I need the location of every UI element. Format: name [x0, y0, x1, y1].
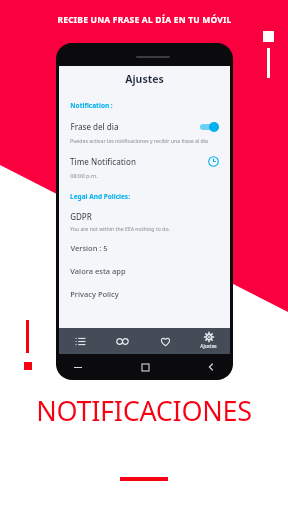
button[interactable]: Ajustes	[187, 328, 230, 354]
button[interactable]: Time Notification	[70, 156, 219, 167]
staticText: GDPR	[70, 211, 92, 222]
button[interactable]: Valora esta app	[70, 266, 219, 276]
staticText: Valora esta app	[70, 266, 126, 276]
button[interactable]: Home	[137, 359, 153, 375]
staticText: RECIBE UNA FRASE AL DÍA EN TU MÓVIL	[57, 14, 232, 26]
button[interactable]: Recents	[70, 359, 86, 375]
staticText: NOTIFICACIONES	[36, 392, 252, 429]
staticText: Frase del dia	[70, 121, 119, 132]
staticText: You are not within the EEA nothing to do…	[70, 225, 170, 232]
staticText: Ajustes	[200, 343, 217, 350]
other: Set time	[208, 156, 219, 167]
button[interactable]: Frases	[59, 328, 101, 354]
staticText: Ajustes	[125, 72, 164, 86]
staticText: Notification :	[70, 101, 113, 110]
staticText: Legal And Policies:	[70, 192, 130, 201]
button[interactable]: GDPR	[70, 211, 219, 222]
staticText: Puedes activar las notificaciones y reci…	[70, 137, 208, 144]
button[interactable]: Back	[203, 359, 219, 375]
button[interactable]: Frase del dia	[70, 121, 219, 132]
staticText: 08:00 p.m.	[70, 172, 98, 180]
staticText: Privacy Policy	[70, 289, 119, 299]
button[interactable]: Aleatorio	[101, 328, 144, 354]
button[interactable]: Favoritos	[144, 328, 187, 354]
button[interactable]: Privacy Policy	[70, 289, 219, 299]
staticText: Version : 5	[70, 243, 108, 253]
button[interactable]: Version : 5	[70, 243, 219, 253]
staticText: Time Notification	[70, 156, 136, 167]
